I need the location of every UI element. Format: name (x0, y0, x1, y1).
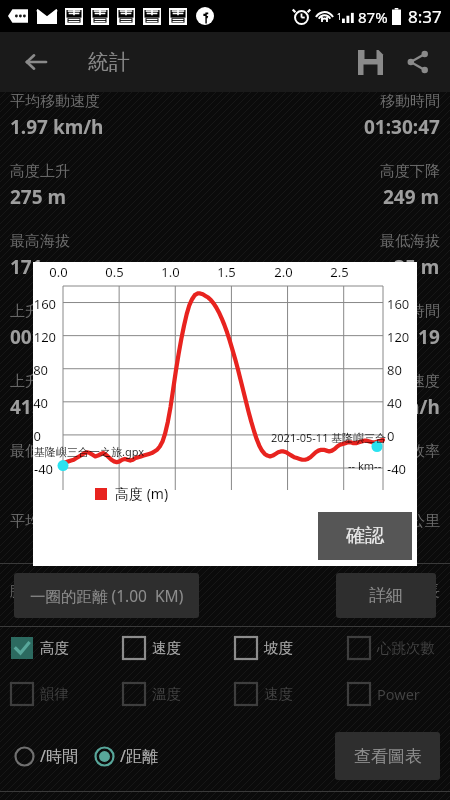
staticText: 下降速度 (380, 372, 440, 391)
staticText: 移動時間 (380, 92, 440, 111)
staticText: 溫度 (152, 685, 181, 703)
staticText: 1.5 (217, 263, 236, 281)
staticText: 41... (10, 394, 48, 420)
staticText: ...19 (402, 324, 440, 350)
button[interactable]: 韻律 (0, 683, 112, 705)
staticText: 每公里 (395, 512, 440, 531)
staticText: 0 (33, 427, 41, 445)
staticText: 01:30:47 (364, 114, 440, 140)
button[interactable]: 確認 (318, 512, 412, 560)
button[interactable]: 速度 (224, 683, 337, 705)
staticText: 上升速度 (10, 372, 70, 391)
button[interactable]: Power (337, 683, 450, 705)
staticText: 0 (387, 427, 395, 445)
staticText: -40 (387, 460, 407, 478)
staticText: 高度下降 (380, 162, 440, 181)
staticText: 平均移動速度 (10, 92, 100, 111)
staticText: 275 m (10, 184, 67, 210)
staticText: 平均心率 (10, 512, 70, 531)
staticText: ...m/h (385, 394, 440, 420)
staticText: 1.97 km/h (10, 114, 104, 140)
button[interactable]: Save (346, 38, 394, 86)
staticText: 韻律 (40, 685, 69, 703)
button[interactable]: /距離 (90, 741, 162, 771)
button[interactable]: 查看圖表 (335, 732, 440, 780)
button[interactable]: 高度 (0, 637, 112, 659)
button[interactable]: 坡度 (224, 637, 337, 659)
staticText: 87% (358, 7, 388, 27)
staticText: 2.0 (274, 263, 293, 281)
staticText: 40 (387, 394, 402, 412)
staticText: 步長 (410, 582, 440, 601)
staticText: -- km-- (348, 458, 382, 473)
staticText: 249 m (383, 184, 440, 210)
button[interactable]: /時間 (10, 741, 82, 771)
staticText: 最低海拔 (380, 232, 440, 251)
staticText: 統計 (88, 49, 130, 75)
staticText: 2021-05-11 基隆嶼三合 (271, 430, 387, 445)
staticText: 40 (33, 394, 48, 412)
staticText: 8:37 (408, 5, 442, 28)
staticText: 一圈的距離 (1.00 KM) (30, 585, 184, 606)
button[interactable]: Share (394, 38, 442, 86)
staticText: 00:... (10, 324, 54, 350)
staticText: 速度 (264, 685, 293, 703)
staticText: 查看圖表 (354, 746, 422, 767)
staticText: 心跳次數 (377, 639, 435, 657)
staticText: 1 (337, 11, 342, 22)
staticText: 高度 (40, 639, 69, 657)
staticText: 0.5 (105, 263, 124, 281)
staticText: 1.0 (161, 263, 180, 281)
staticText: 160 (33, 295, 56, 313)
staticText: 171 m (10, 254, 67, 280)
staticText: 高度上升 (10, 162, 70, 181)
staticText: -40 (33, 460, 53, 478)
staticText: 上升時間 (10, 302, 70, 321)
staticText: 120 (33, 328, 56, 346)
staticText: 確認 (346, 524, 384, 548)
button[interactable]: 一圈的距離 (1.00 KM) (14, 573, 199, 618)
button[interactable]: 速度 (112, 637, 224, 659)
staticText: 160 (387, 295, 410, 313)
staticText: 120 (387, 328, 410, 346)
staticText: -35 m (388, 254, 440, 280)
staticText: /距離 (120, 745, 158, 767)
staticText: Power (377, 684, 420, 704)
staticText: 基隆嶼三合一之旅.gpx (34, 444, 145, 459)
staticText: 80 (33, 361, 48, 379)
button[interactable]: 心跳次數 (337, 637, 450, 659)
staticText: 腳步 (10, 582, 40, 601)
staticText: 詳細 (369, 585, 403, 606)
staticText: 坡度 (264, 639, 293, 657)
staticText: 0.0 (49, 263, 68, 281)
staticText: 上升時間 (380, 302, 440, 321)
button[interactable]: Back (12, 38, 60, 86)
staticText: 速度 (152, 639, 181, 657)
staticText: 最高海拔 (10, 232, 70, 251)
staticText: /時間 (40, 745, 78, 767)
staticText: 80 (387, 361, 402, 379)
staticText: 2.5 (330, 263, 349, 281)
button[interactable]: 溫度 (112, 683, 224, 705)
staticText: 最高效率 (380, 442, 440, 461)
staticText: 高度 (m) (115, 484, 169, 503)
button[interactable]: 詳細 (336, 573, 436, 618)
staticText: 最低溫度 (10, 442, 70, 461)
